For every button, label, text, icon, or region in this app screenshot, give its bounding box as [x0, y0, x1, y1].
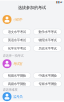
- button[interactable]: 历史水平考试: [33, 46, 61, 51]
- button[interactable]: 初级水平测验: [2, 73, 31, 78]
- button[interactable]: 中级水平测验: [33, 73, 61, 78]
- staticText: 语文水平考试: [8, 30, 26, 34]
- button[interactable]: 物理水平考试: [33, 37, 61, 43]
- staticText: 请选择难度: [2, 88, 17, 92]
- staticText: 中级水平测验: [38, 73, 56, 78]
- staticText: 数学水平考试: [38, 30, 56, 34]
- staticText: 高级水平测验: [8, 82, 26, 86]
- button[interactable]: 专家水平测验: [33, 81, 61, 87]
- staticText: 英语水平考试: [8, 38, 26, 42]
- staticText: 选拔参加的考试: [18, 5, 46, 10]
- staticText: 历史水平考试: [38, 46, 56, 50]
- button[interactable]: 高级水平测验: [2, 81, 31, 87]
- button[interactable]: 语文水平考试: [2, 29, 31, 35]
- staticText: 专家水平测验: [38, 82, 56, 86]
- button[interactable]: 数学水平考试: [33, 29, 61, 35]
- staticText: 考试官: [13, 61, 22, 66]
- button[interactable]: 英语水平考试: [2, 37, 31, 43]
- staticText: 物理水平考试: [38, 38, 56, 42]
- staticText: 请选择一项考试: [2, 54, 23, 58]
- staticText: 初级水平测验: [8, 73, 26, 78]
- staticText: ▮▮▰: [56, 0, 62, 4]
- staticText: 化学水平考试: [8, 46, 26, 50]
- staticText: 监考员: [13, 94, 22, 99]
- button[interactable]: 化学水平考试: [2, 46, 31, 51]
- staticText: 小助手: [13, 17, 22, 22]
